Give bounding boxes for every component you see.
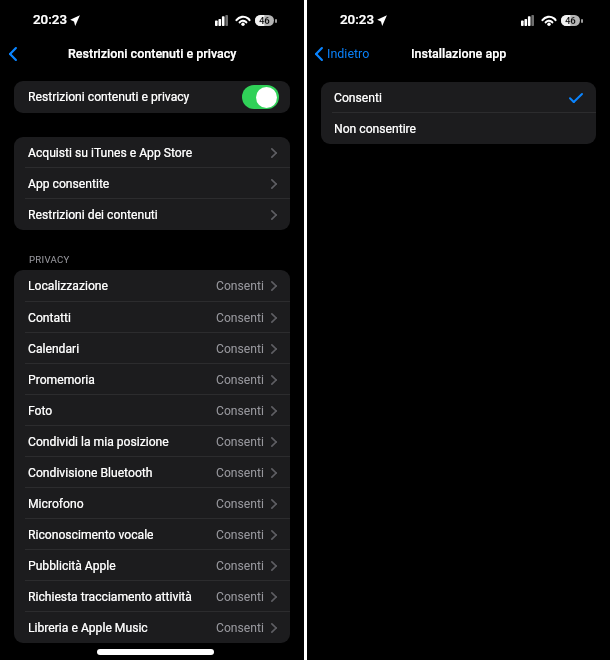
button[interactable]: Indietro bbox=[307, 40, 380, 67]
staticText: 46 bbox=[259, 15, 270, 26]
button[interactable]: Non consentire bbox=[321, 113, 596, 144]
staticText: Foto bbox=[28, 404, 216, 418]
staticText: Promemoria bbox=[28, 373, 216, 387]
staticText: Consenti bbox=[216, 342, 264, 356]
button[interactable]: Microfono bbox=[14, 488, 290, 519]
staticText: Richiesta tracciamento attività bbox=[28, 590, 216, 604]
staticText: Restrizioni contenuti e privacy bbox=[28, 90, 190, 104]
button[interactable]: Condividi la mia posizione bbox=[14, 426, 290, 457]
button[interactable]: Localizzazione bbox=[14, 270, 290, 302]
button[interactable]: Calendari bbox=[14, 333, 290, 364]
button[interactable]: App consentite bbox=[14, 168, 290, 199]
button[interactable]: Riconoscimento vocale bbox=[14, 519, 290, 550]
button[interactable]: Pubblicità Apple bbox=[14, 550, 290, 581]
staticText: Installazione app bbox=[411, 46, 507, 61]
button[interactable]: Acquisti su iTunes e App Store bbox=[14, 137, 290, 168]
staticText: Consenti bbox=[216, 311, 264, 325]
staticText: Consenti bbox=[216, 373, 264, 387]
staticText: Restrizioni dei contenuti bbox=[28, 208, 271, 222]
staticText: Consenti bbox=[216, 559, 264, 573]
button[interactable]: Foto bbox=[14, 395, 290, 426]
staticText: App consentite bbox=[28, 177, 271, 191]
staticText: Consenti bbox=[216, 621, 264, 635]
staticText: Consenti bbox=[216, 404, 264, 418]
staticText: Condivisione Bluetooth bbox=[28, 466, 216, 480]
staticText: 46 bbox=[565, 15, 576, 26]
other: Selezionato bbox=[569, 93, 583, 103]
staticText: Consenti bbox=[216, 466, 264, 480]
staticText: Consenti bbox=[216, 435, 264, 449]
staticText: Riconoscimento vocale bbox=[28, 528, 216, 542]
staticText: Microfono bbox=[28, 497, 216, 511]
staticText: Consenti bbox=[216, 590, 264, 604]
staticText: 20:23 bbox=[33, 12, 67, 28]
staticText: 20:23 bbox=[340, 12, 374, 28]
button[interactable]: Restrizioni dei contenuti bbox=[14, 199, 290, 230]
button[interactable]: Libreria e Apple Music bbox=[14, 612, 290, 643]
staticText: Localizzazione bbox=[28, 279, 216, 293]
button[interactable]: Indietro bbox=[2, 43, 24, 65]
button[interactable]: Condivisione Bluetooth bbox=[14, 457, 290, 488]
button[interactable]: Consenti bbox=[321, 82, 596, 113]
button[interactable]: Contatti bbox=[14, 302, 290, 333]
button[interactable]: Richiesta tracciamento attività bbox=[14, 581, 290, 612]
staticText: Contatti bbox=[28, 311, 216, 325]
staticText: PRIVACY bbox=[29, 254, 70, 265]
staticText: Calendari bbox=[28, 342, 216, 356]
button[interactable]: Promemoria bbox=[14, 364, 290, 395]
staticText: Consenti bbox=[216, 497, 264, 511]
staticText: Consenti bbox=[216, 528, 264, 542]
staticText: Indietro bbox=[327, 46, 370, 61]
staticText: Libreria e Apple Music bbox=[28, 621, 216, 635]
button[interactable]: Restrizioni contenuti e privacy bbox=[14, 81, 290, 113]
staticText: Restrizioni contenuti e privacy bbox=[68, 46, 237, 61]
staticText: Condividi la mia posizione bbox=[28, 435, 216, 449]
staticText: Pubblicità Apple bbox=[28, 559, 216, 573]
staticText: Consenti bbox=[216, 279, 264, 293]
staticText: Consenti bbox=[334, 91, 569, 105]
staticText: Acquisti su iTunes e App Store bbox=[28, 146, 271, 160]
staticText: Non consentire bbox=[334, 122, 417, 136]
